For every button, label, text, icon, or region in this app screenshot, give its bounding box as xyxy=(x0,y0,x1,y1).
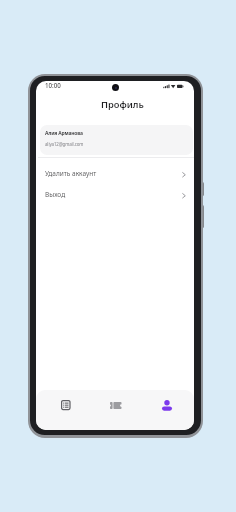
staticText: Алия Арманова xyxy=(45,130,83,137)
button[interactable]: Выход xyxy=(36,182,194,203)
button[interactable]: Удалить аккаунт xyxy=(36,161,194,182)
staticText: Удалить аккаунт xyxy=(45,169,97,178)
button[interactable] xyxy=(96,391,136,419)
staticText: 10:00 xyxy=(45,81,61,89)
staticText: Выход xyxy=(45,190,66,199)
staticText: Профиль xyxy=(101,98,144,111)
staticText: aliya12@gmail.com xyxy=(45,141,84,147)
button[interactable] xyxy=(46,391,86,419)
button[interactable] xyxy=(147,391,187,419)
